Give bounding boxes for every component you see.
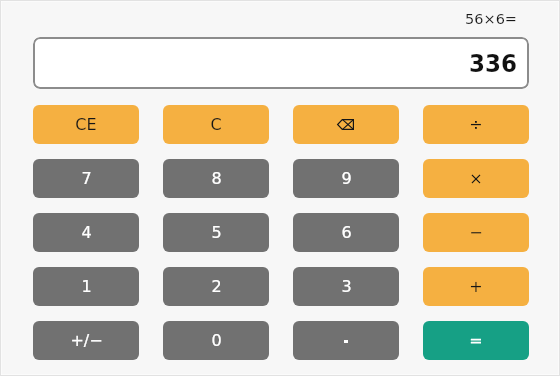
staticText: = <box>469 331 483 350</box>
button[interactable]: Backspace <box>293 105 399 144</box>
button[interactable]: 7 <box>33 159 139 198</box>
button[interactable]: 336 <box>33 37 529 89</box>
staticText: × <box>469 169 483 188</box>
staticText: 4 <box>81 223 92 242</box>
button[interactable]: + <box>423 267 529 306</box>
staticText: CE <box>75 115 97 134</box>
staticText: 8 <box>211 169 222 188</box>
staticText: 5 <box>211 223 222 242</box>
staticText: + <box>469 277 483 296</box>
button[interactable]: C <box>163 105 269 144</box>
button[interactable]: 2 <box>163 267 269 306</box>
button[interactable]: − <box>423 213 529 252</box>
button[interactable]: 5 <box>163 213 269 252</box>
button[interactable]: 8 <box>163 159 269 198</box>
staticText: 1 <box>81 277 92 296</box>
staticText: 3 <box>341 277 352 296</box>
button[interactable]: = <box>423 321 529 360</box>
button[interactable]: ÷ <box>423 105 529 144</box>
staticText: 2 <box>211 277 222 296</box>
button[interactable]: 4 <box>33 213 139 252</box>
staticText: 9 <box>341 169 352 188</box>
button[interactable]: +/− <box>33 321 139 360</box>
staticText: 0 <box>211 331 222 350</box>
staticText: +/− <box>70 331 103 350</box>
button[interactable]: Decimal point <box>293 321 399 360</box>
button[interactable]: 3 <box>293 267 399 306</box>
button[interactable]: 9 <box>293 159 399 198</box>
button[interactable]: 1 <box>33 267 139 306</box>
button[interactable]: 0 <box>163 321 269 360</box>
staticText: − <box>469 223 483 242</box>
staticText: 56×6= <box>33 11 517 28</box>
staticText: C <box>210 115 222 134</box>
button[interactable]: × <box>423 159 529 198</box>
staticText: ÷ <box>469 115 483 134</box>
button[interactable]: CE <box>33 105 139 144</box>
staticText: 6 <box>341 223 352 242</box>
button[interactable]: 6 <box>293 213 399 252</box>
staticText: 7 <box>81 169 92 188</box>
staticText: 336 <box>469 48 517 78</box>
